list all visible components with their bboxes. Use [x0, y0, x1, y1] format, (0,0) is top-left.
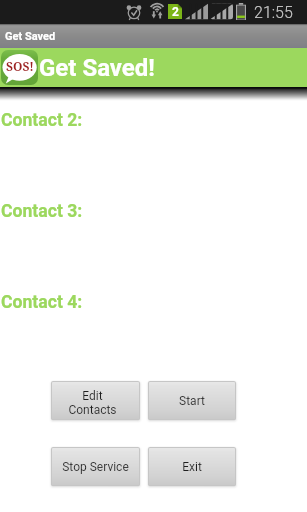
button[interactable]: Start [148, 381, 236, 420]
staticText: Edit Contacts [68, 389, 117, 417]
staticText: Contact 4: [1, 292, 83, 313]
button[interactable]: Edit Contacts [51, 381, 140, 420]
staticText: Get Saved [5, 30, 56, 43]
staticText: Contact 2: [1, 110, 83, 131]
staticText: Start [179, 394, 205, 408]
staticText: 2 [172, 5, 179, 19]
button[interactable]: Exit [148, 447, 236, 486]
staticText: Stop Service [62, 460, 129, 474]
staticText: Get Saved! [39, 54, 155, 82]
staticText: 21:55 [254, 3, 293, 22]
staticText: Exit [182, 460, 202, 474]
staticText: SOS! [6, 58, 34, 74]
button[interactable]: Stop Service [51, 447, 140, 486]
staticText: Contact 3: [1, 201, 83, 222]
